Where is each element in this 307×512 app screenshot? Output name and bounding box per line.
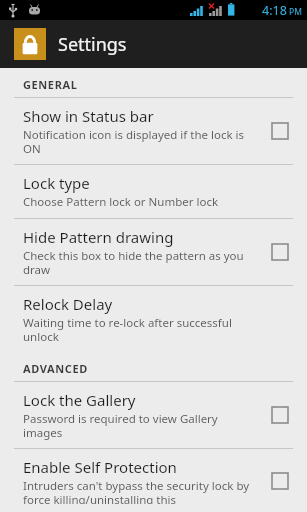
button[interactable]: Enable Self Protection: [0, 449, 307, 512]
button[interactable]: Lock type: [0, 165, 307, 218]
button[interactable]: Hide Pattern drawing: [0, 219, 307, 285]
button[interactable]: Lock the Gallery: [0, 382, 307, 448]
staticText: Password is required to view Gallery ima…: [23, 411, 255, 440]
staticText: Relock Delay: [23, 294, 113, 314]
staticText: Intruders can't bypass the security lock…: [23, 478, 255, 504]
staticText: Show in Status bar: [23, 106, 154, 126]
button[interactable]: Hide Pattern drawing toggle: [263, 235, 297, 269]
button[interactable]: Show in Status bar: [0, 98, 307, 164]
staticText: PM: [289, 6, 302, 18]
staticText: Lock type: [23, 173, 90, 193]
button[interactable]: Show in Status bar toggle: [263, 114, 297, 148]
button[interactable]: Lock the Gallery toggle: [263, 398, 297, 432]
button[interactable]: Enable Self Protection toggle: [263, 464, 297, 498]
staticText: GENERAL: [23, 77, 78, 92]
staticText: Check this box to hide the pattern as yo…: [23, 248, 255, 277]
staticText: Lock the Gallery: [23, 390, 136, 410]
staticText: Settings: [58, 32, 127, 57]
button[interactable]: Relock Delay: [0, 286, 307, 352]
staticText: Notification icon is displayed if the lo…: [23, 127, 255, 156]
staticText: Hide Pattern drawing: [23, 227, 174, 247]
button[interactable]: App icon: [14, 28, 46, 60]
staticText: Enable Self Protection: [23, 457, 177, 477]
staticText: 4:18: [262, 2, 287, 19]
staticText: Choose Pattern lock or Number lock: [23, 194, 219, 210]
staticText: ADVANCED: [23, 361, 88, 376]
staticText: Waiting time to re-lock after successful…: [23, 315, 255, 344]
